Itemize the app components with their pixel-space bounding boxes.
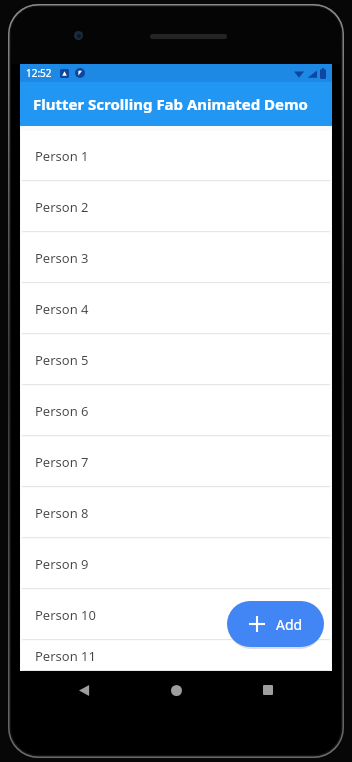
staticText: Add	[276, 615, 303, 634]
staticText: Person 3	[35, 249, 89, 267]
button[interactable]: Back	[71, 677, 97, 703]
button[interactable]: Person 6	[21, 386, 331, 435]
button[interactable]: Person 8	[21, 488, 331, 537]
staticText: Flutter Scrolling Fab Animated Demo	[33, 94, 308, 114]
staticText: Person 6	[35, 402, 89, 420]
button[interactable]: Person 10	[21, 590, 331, 639]
button[interactable]: Person 11	[21, 641, 331, 670]
staticText: Person 4	[35, 300, 89, 318]
button[interactable]: Person 9	[21, 539, 331, 588]
staticText: Person 1	[35, 147, 89, 165]
staticText: Person 10	[35, 606, 96, 624]
staticText: Person 11	[35, 647, 96, 665]
button[interactable]: Person 5	[21, 335, 331, 384]
other: Add	[249, 616, 265, 632]
button[interactable]: Add	[227, 601, 324, 647]
button[interactable]: Recent apps	[255, 677, 281, 703]
staticText: Person 2	[35, 198, 89, 216]
staticText: Person 7	[35, 453, 89, 471]
button[interactable]: Person 7	[21, 437, 331, 486]
button[interactable]: Person 1	[21, 131, 331, 180]
button[interactable]: Person 4	[21, 284, 331, 333]
staticText: 12:52	[26, 66, 52, 80]
staticText: Person 5	[35, 351, 89, 369]
staticText: Person 8	[35, 504, 89, 522]
button[interactable]: Person 2	[21, 182, 331, 231]
button[interactable]: Person 3	[21, 233, 331, 282]
staticText: Person 9	[35, 555, 89, 573]
button[interactable]: Home	[163, 677, 189, 703]
